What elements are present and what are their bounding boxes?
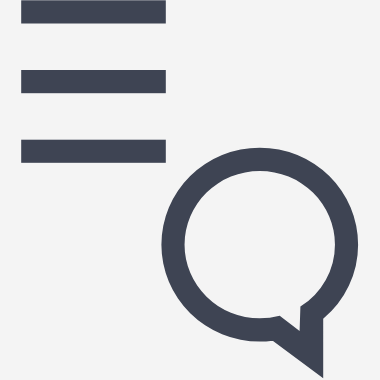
button[interactable]: Comments bbox=[0, 0, 380, 380]
